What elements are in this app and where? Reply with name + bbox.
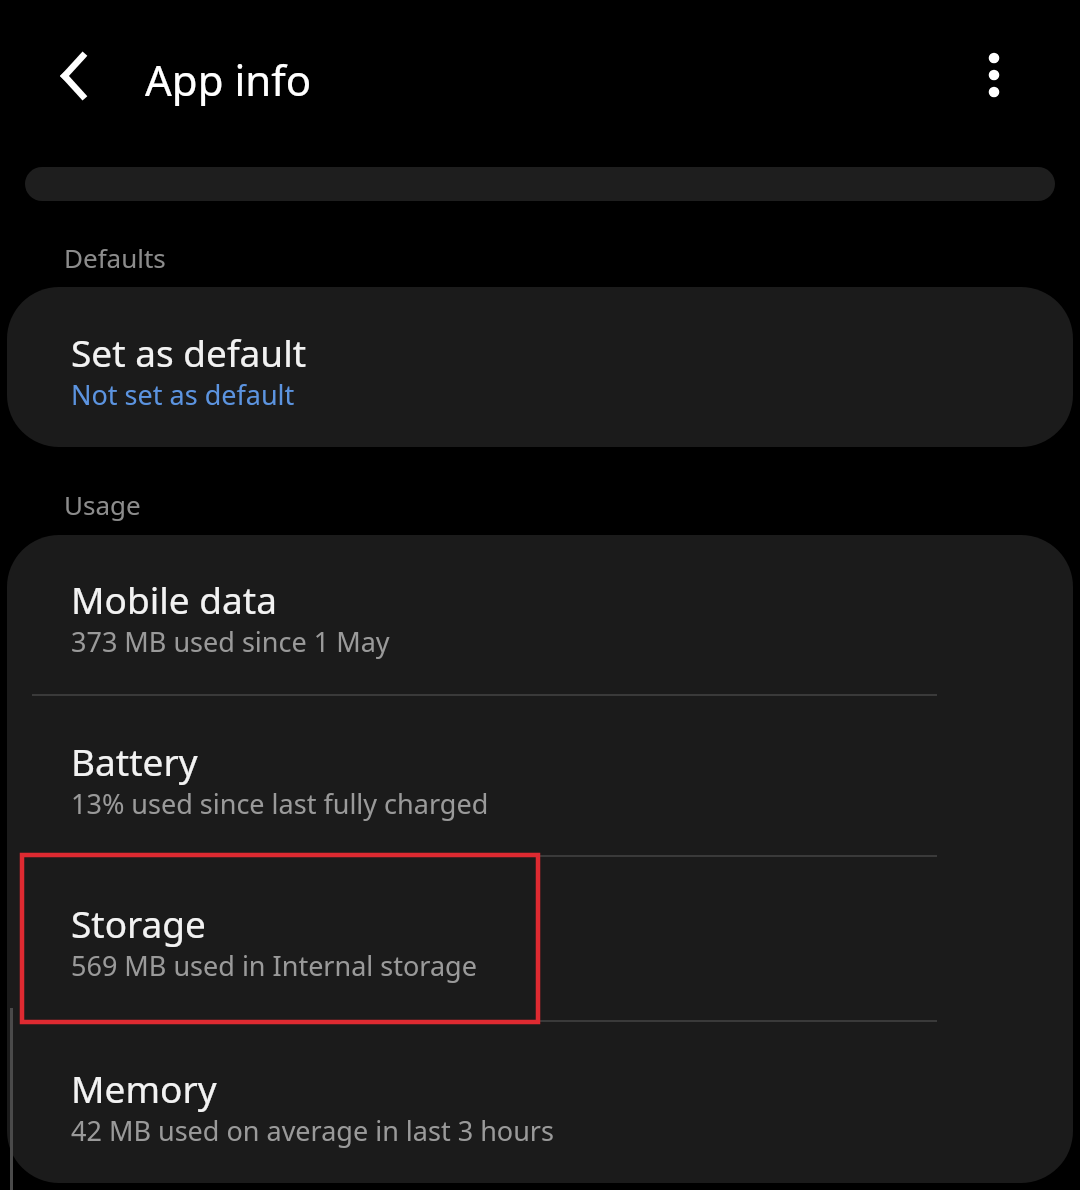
staticText: Usage: [64, 487, 141, 522]
staticText: 373 MB used since 1 May: [71, 623, 390, 660]
button[interactable]: Mobile data: [7, 535, 1073, 694]
staticText: Not set as default: [71, 376, 295, 413]
staticText: 42 MB used on average in last 3 hours: [71, 1112, 554, 1149]
staticText: Memory: [71, 1063, 217, 1113]
button[interactable]: Memory: [7, 1022, 1073, 1182]
staticText: 569 MB used in Internal storage: [71, 947, 477, 984]
button[interactable]: Set as default: [7, 287, 1073, 447]
button[interactable]: More options: [961, 42, 1027, 108]
button[interactable]: Battery: [7, 696, 1073, 855]
staticText: App info: [145, 51, 312, 108]
button[interactable]: Back: [40, 43, 106, 109]
button[interactable]: Storage: [7, 857, 1073, 1020]
staticText: Battery: [71, 736, 198, 786]
staticText: Mobile data: [71, 574, 277, 624]
staticText: Defaults: [64, 240, 166, 275]
staticText: 13% used since last fully charged: [71, 785, 489, 822]
staticText: Set as default: [71, 327, 307, 377]
staticText: Storage: [71, 898, 206, 948]
